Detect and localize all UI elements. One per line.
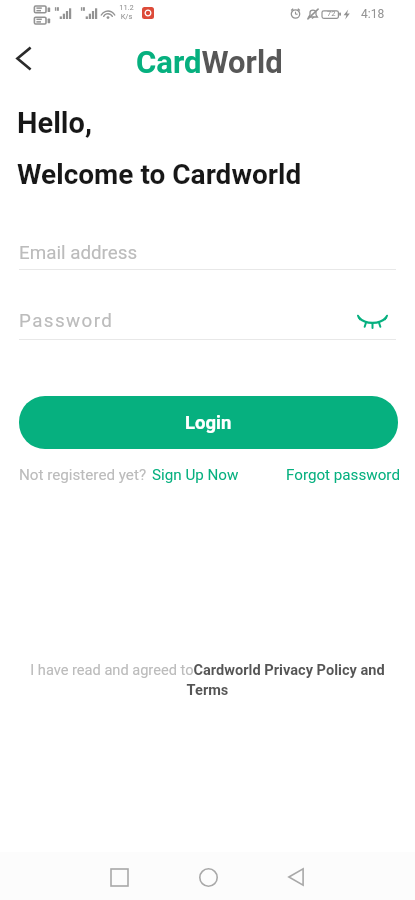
staticText: 72 <box>327 9 336 18</box>
button[interactable]: Back <box>1 36 45 80</box>
button[interactable]: Recent apps <box>96 854 142 900</box>
button[interactable]: Sign Up Now <box>152 466 239 484</box>
button[interactable]: Login <box>19 396 398 449</box>
staticText: 11.2 K/s <box>119 3 134 21</box>
button[interactable]: Home <box>185 854 231 900</box>
staticText: Email address <box>19 242 138 264</box>
staticText: Welcome to Cardworld <box>17 158 302 191</box>
staticText: Not registered yet? <box>19 466 147 484</box>
staticText: 4:18 <box>361 7 385 21</box>
button[interactable]: Back <box>273 854 319 900</box>
button[interactable]: Forgot password <box>286 466 400 484</box>
staticText: Hello, <box>17 106 93 140</box>
staticText: Forgot password <box>286 466 400 484</box>
staticText: Login <box>185 412 232 434</box>
button[interactable]: Show password <box>356 304 388 336</box>
staticText: I have read and agreed toCardworld Priva… <box>17 661 398 698</box>
staticText: Sign Up Now <box>152 466 239 484</box>
staticText: Password <box>19 310 114 332</box>
staticText: CardWorld <box>136 44 283 80</box>
